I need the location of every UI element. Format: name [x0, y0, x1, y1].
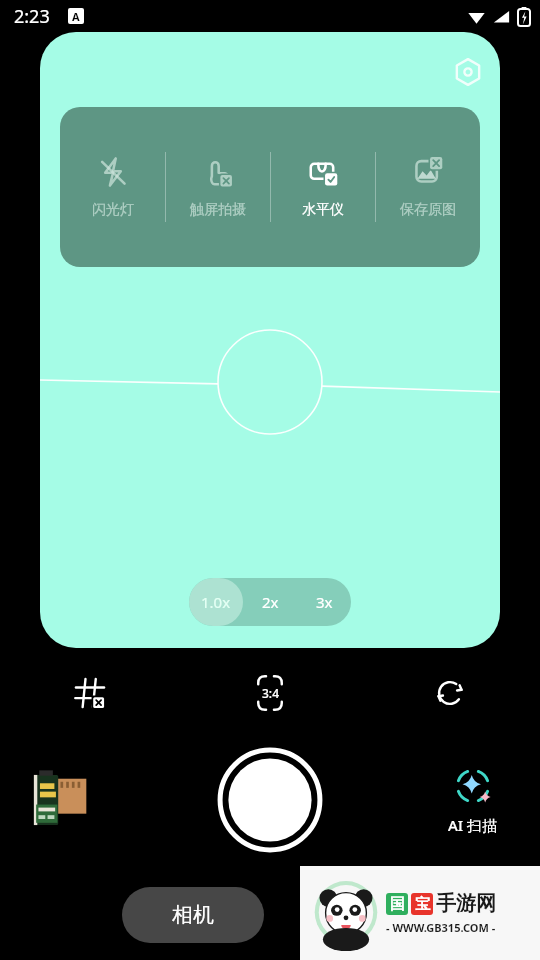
button[interactable]: Shutter	[218, 748, 322, 852]
button[interactable]: Grid off	[66, 669, 114, 717]
button[interactable]: 1.0x	[189, 578, 243, 626]
button[interactable]: AI 扫描	[428, 765, 518, 835]
staticText: 水平仪	[302, 201, 344, 219]
staticText: 触屏拍摄	[190, 201, 246, 219]
staticText: 2:23	[14, 4, 50, 29]
staticText: 国	[390, 895, 405, 914]
button[interactable]: 水平仪	[271, 107, 375, 267]
button[interactable]: Switch camera	[426, 669, 474, 717]
staticText: - WWW.GB315.COM -	[386, 920, 496, 935]
staticText: 宝	[415, 895, 430, 914]
button[interactable]: Settings	[448, 52, 488, 92]
staticText: 保存原图	[400, 201, 456, 219]
button[interactable]: 保存原图	[376, 107, 480, 267]
button[interactable]: Gallery	[24, 762, 100, 838]
staticText: 闪光灯	[92, 201, 134, 219]
button[interactable]: 相机	[122, 887, 264, 943]
staticText: 1.0x	[201, 592, 231, 612]
staticText: 2x	[262, 592, 279, 612]
staticText: A	[72, 9, 80, 24]
staticText: 手游网	[436, 891, 496, 916]
button[interactable]: Aspect ratio 3:4	[246, 669, 294, 717]
staticText: AI 扫描	[448, 815, 498, 835]
button[interactable]: 触屏拍摄	[166, 107, 270, 267]
button[interactable]: 3x	[297, 578, 351, 626]
staticText: 相机	[172, 902, 214, 928]
button[interactable]: 闪光灯	[60, 107, 165, 267]
staticText: 3:4	[262, 685, 279, 701]
staticText: 3x	[316, 592, 333, 612]
button[interactable]: 2x	[243, 578, 297, 626]
